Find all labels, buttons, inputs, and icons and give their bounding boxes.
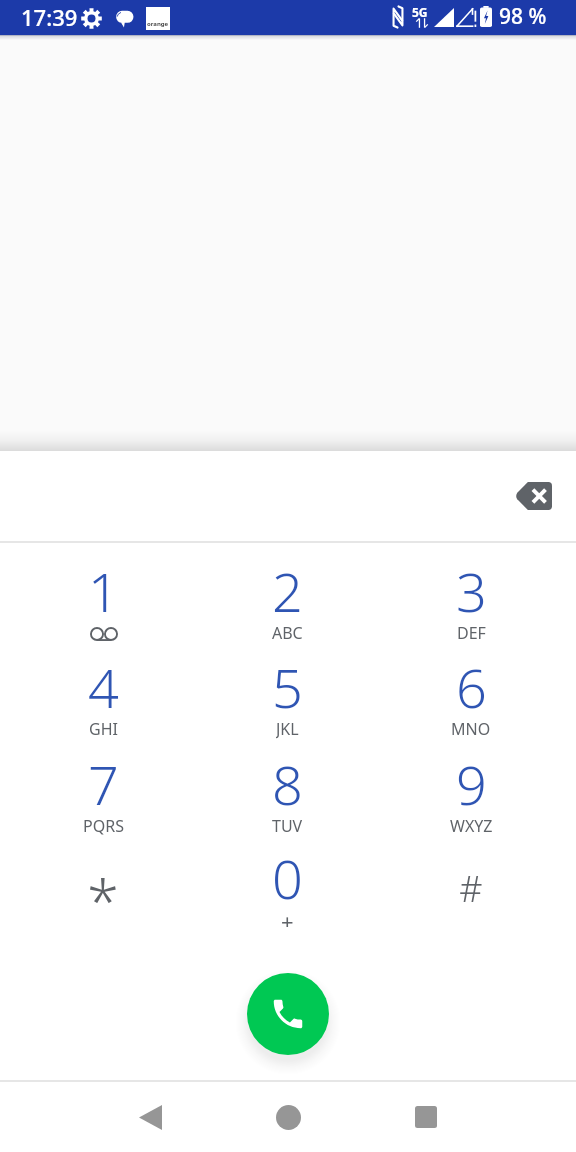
staticText: DEF xyxy=(457,622,486,643)
button[interactable]: Recents xyxy=(391,1082,461,1152)
button[interactable]: 0 xyxy=(202,841,372,936)
staticText: + xyxy=(281,906,294,927)
button[interactable]: Home xyxy=(253,1082,323,1152)
button[interactable]: 9 xyxy=(386,747,556,842)
staticText: 1 xyxy=(88,554,119,628)
button[interactable]: 2 xyxy=(202,554,372,649)
staticText: 8 xyxy=(272,747,303,821)
staticText: orange xyxy=(147,20,169,28)
staticText: 7 xyxy=(88,747,119,821)
staticText: 2 xyxy=(272,554,303,628)
staticText: MNO xyxy=(451,718,491,739)
staticText: 0 xyxy=(272,841,303,915)
staticText: WXYZ xyxy=(450,815,493,836)
button[interactable]: * xyxy=(18,841,188,936)
button[interactable]: 5 xyxy=(202,650,372,745)
button[interactable]: Call xyxy=(247,973,329,1055)
button[interactable]: # xyxy=(386,841,556,936)
staticText: 4 xyxy=(88,650,119,724)
staticText: JKL xyxy=(276,718,299,739)
staticText: # xyxy=(459,864,483,913)
staticText: 98 % xyxy=(499,2,547,31)
staticText: 6 xyxy=(456,650,487,724)
staticText: * xyxy=(87,861,119,940)
button[interactable]: 3 xyxy=(386,554,556,649)
staticText: PQRS xyxy=(83,815,124,836)
staticText: 5G xyxy=(412,4,428,20)
staticText: 3 xyxy=(456,554,487,628)
staticText: 17:39 xyxy=(21,2,78,32)
staticText: TUV xyxy=(272,815,303,836)
button[interactable]: 7 xyxy=(18,747,188,842)
button[interactable]: 8 xyxy=(202,747,372,842)
button[interactable]: 1 xyxy=(18,554,188,649)
staticText: 9 xyxy=(456,747,487,821)
button[interactable]: 4 xyxy=(18,650,188,745)
staticText: GHI xyxy=(89,718,118,739)
staticText: ABC xyxy=(272,622,303,643)
button[interactable]: Backspace xyxy=(506,468,562,524)
button[interactable]: Back xyxy=(115,1082,185,1152)
staticText: 5 xyxy=(272,650,303,724)
button[interactable]: 6 xyxy=(386,650,556,745)
